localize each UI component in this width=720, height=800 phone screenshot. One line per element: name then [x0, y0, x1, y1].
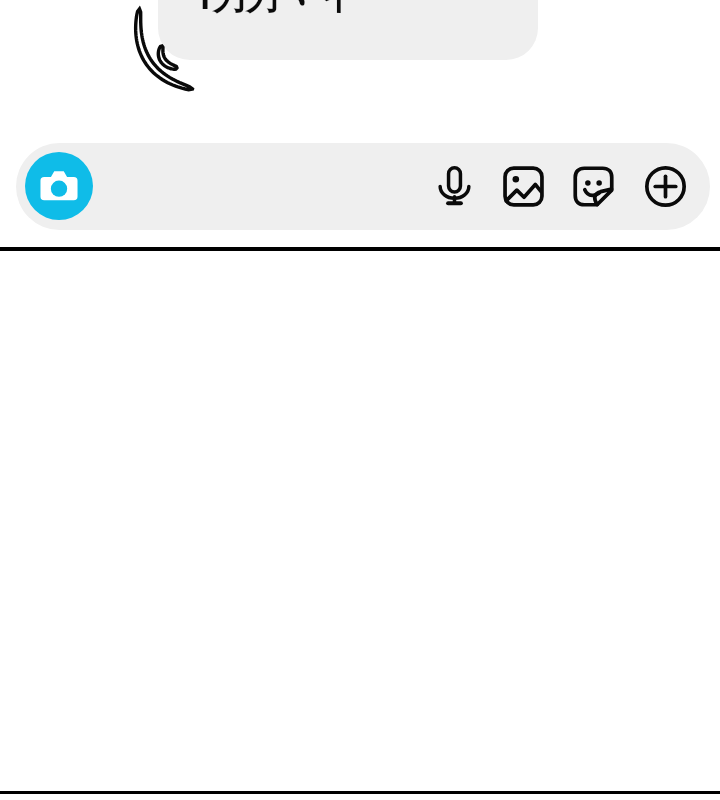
button[interactable]: Stickers: [566, 159, 620, 213]
button[interactable]: More options: [638, 159, 692, 213]
button[interactable]: Camera: [25, 152, 93, 220]
button[interactable]: Gallery: [496, 159, 550, 213]
button[interactable]: Voice message: [427, 159, 481, 213]
staticText: 1刀刀ヽ イ: [194, 0, 355, 19]
